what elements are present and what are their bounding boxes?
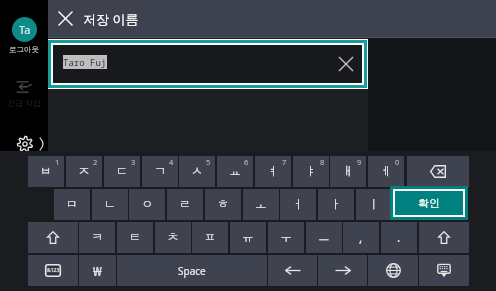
button[interactable]: Expand sidebar: [37, 136, 46, 152]
button[interactable]: ㅍ: [192, 222, 228, 253]
button[interactable]: ㅛ: [217, 156, 253, 187]
button[interactable]: Shift: [28, 222, 78, 253]
button[interactable]: Clear text: [332, 50, 360, 78]
button[interactable]: 긴급 작업: [0, 81, 48, 108]
staticText: Ta: [19, 22, 31, 37]
staticText: ㅣ: [368, 196, 380, 211]
button[interactable]: ㄷ: [104, 156, 140, 187]
staticText: ㅠ: [242, 229, 254, 244]
staticText: ㅁ: [66, 196, 78, 211]
button[interactable]: ㅊ: [155, 222, 191, 253]
button[interactable]: Move cursor right: [318, 255, 367, 286]
button[interactable]: Taro Fuj: [53, 45, 362, 83]
staticText: 4: [169, 157, 174, 167]
button[interactable]: Ta: [0, 17, 48, 54]
staticText: 8: [320, 157, 325, 167]
staticText: ㅈ: [78, 163, 90, 178]
staticText: ㅊ: [167, 229, 179, 244]
button[interactable]: ㄹ: [167, 189, 203, 220]
button[interactable]: ㅇ: [129, 189, 165, 220]
staticText: 확인: [418, 196, 440, 210]
button[interactable]: ㅑ: [293, 156, 329, 187]
staticText: ㄷ: [116, 163, 128, 178]
staticText: Space: [178, 264, 206, 278]
button[interactable]: ㅔ: [368, 156, 404, 187]
button[interactable]: Space: [117, 255, 267, 286]
button[interactable]: ㅜ: [268, 222, 304, 253]
button[interactable]: ㅓ: [280, 189, 316, 220]
staticText: 2: [93, 157, 98, 167]
staticText: 6: [244, 157, 249, 167]
button[interactable]: .: [381, 222, 417, 253]
button[interactable]: ㅋ: [79, 222, 115, 253]
button[interactable]: ,: [343, 222, 379, 253]
button[interactable]: Settings: [16, 135, 33, 152]
staticText: ㅕ: [267, 163, 279, 178]
staticText: &123: [47, 267, 60, 274]
staticText: ₩: [93, 262, 102, 280]
button[interactable]: ㅏ: [318, 189, 354, 220]
staticText: ㄴ: [104, 196, 116, 211]
staticText: ㅎ: [217, 196, 229, 211]
staticText: ㄱ: [154, 163, 166, 178]
staticText: ㅇ: [141, 196, 153, 211]
button[interactable]: ㅁ: [54, 189, 90, 220]
button[interactable]: Change language: [368, 255, 418, 286]
button[interactable]: ㅡ: [306, 222, 342, 253]
staticText: ㅔ: [380, 163, 392, 178]
staticText: 저장 이름: [83, 10, 139, 28]
button[interactable]: ㅅ: [179, 156, 215, 187]
staticText: ㅛ: [229, 163, 241, 178]
staticText: 5: [206, 157, 211, 167]
staticText: 7: [282, 157, 287, 167]
staticText: ㄹ: [179, 196, 191, 211]
staticText: ㅡ: [318, 229, 330, 244]
staticText: ㅓ: [292, 196, 304, 211]
staticText: ㅏ: [330, 196, 342, 211]
button[interactable]: ㅂ: [28, 156, 64, 187]
button[interactable]: ㅈ: [66, 156, 102, 187]
button[interactable]: ㅠ: [230, 222, 266, 253]
button[interactable]: ㅣ: [356, 189, 392, 220]
button[interactable]: Close: [48, 0, 83, 37]
button[interactable]: Won sign: [79, 255, 116, 286]
button[interactable]: ㅎ: [205, 189, 241, 220]
button[interactable]: Hide keyboard: [419, 255, 469, 286]
staticText: 1: [55, 157, 60, 167]
staticText: ㅍ: [204, 229, 216, 244]
button[interactable]: Backspace: [407, 156, 469, 187]
staticText: ㅋ: [91, 229, 103, 244]
staticText: ㅜ: [280, 229, 292, 244]
button[interactable]: ㄱ: [142, 156, 178, 187]
staticText: 9: [357, 157, 362, 167]
button[interactable]: Move cursor left: [268, 255, 317, 286]
staticText: ㅗ: [255, 196, 267, 211]
staticText: ㅌ: [129, 229, 141, 244]
staticText: ㅐ: [342, 163, 354, 178]
staticText: 로그아웃: [9, 45, 39, 54]
button[interactable]: Symbols: [28, 255, 78, 286]
button[interactable]: ㅐ: [330, 156, 366, 187]
button[interactable]: 확인: [395, 191, 463, 215]
button[interactable]: ㅕ: [255, 156, 291, 187]
button[interactable]: ㅌ: [117, 222, 153, 253]
button[interactable]: ㄴ: [92, 189, 128, 220]
staticText: 긴급 작업: [7, 97, 42, 108]
button[interactable]: Shift: [419, 222, 469, 253]
staticText: Taro Fuj: [63, 56, 107, 68]
staticText: ㅅ: [191, 163, 203, 178]
staticText: 3: [131, 157, 136, 167]
button[interactable]: ㅗ: [243, 189, 279, 220]
staticText: 0: [395, 157, 400, 167]
staticText: ㅂ: [40, 163, 52, 178]
staticText: .: [397, 229, 401, 245]
staticText: ,: [359, 229, 363, 245]
staticText: ㅑ: [305, 163, 317, 178]
